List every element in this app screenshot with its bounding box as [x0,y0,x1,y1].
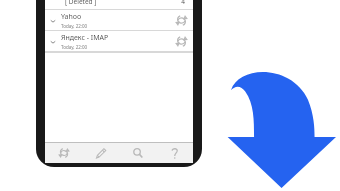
button[interactable]: Compose [82,143,119,163]
other: Download arrow [226,62,336,188]
button[interactable]: Sync account [175,14,188,27]
button[interactable]: Яндекс - IMAP [45,31,193,52]
staticText: [ Deleted ] [65,0,97,6]
button[interactable]: Sync account [175,35,188,48]
staticText: 4 [181,0,185,6]
staticText: Яндекс - IMAP [61,33,109,43]
button[interactable]: [ Deleted ] [45,0,193,10]
button[interactable]: Yahoo [45,10,193,31]
staticText: Today, 22:00 [61,44,88,50]
staticText: Today, 22:00 [61,23,88,29]
button[interactable]: Help [156,143,193,163]
button[interactable]: Refresh [45,143,82,163]
staticText: Yahoo [61,12,82,22]
button[interactable]: Search [119,143,156,163]
